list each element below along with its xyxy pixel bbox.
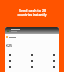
staticText: €25 bbox=[6, 43, 13, 48]
button[interactable]: €25 bbox=[5, 27, 59, 72]
button[interactable] bbox=[6, 36, 59, 38]
staticText: Send cash to 20 bbox=[19, 8, 46, 13]
staticText: countries instantly bbox=[17, 13, 47, 17]
